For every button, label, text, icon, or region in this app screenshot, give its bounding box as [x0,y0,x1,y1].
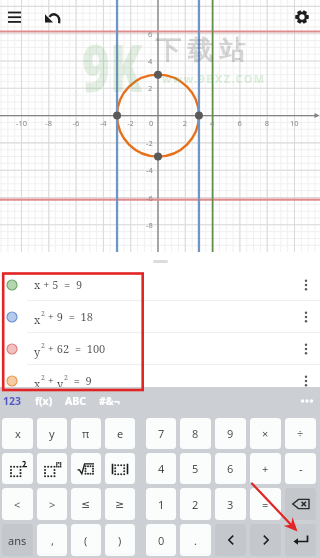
button[interactable]: 5 [180,453,211,484]
button[interactable] [250,524,281,556]
staticText: 2 [192,497,199,512]
staticText: ( [84,533,88,548]
button[interactable]: Menu [4,7,24,27]
button[interactable]: Undo [42,7,62,27]
button[interactable]: ≤ [71,488,101,520]
staticText: 5 [192,461,199,476]
staticText: < [14,497,21,512]
staticText: ≤ [81,498,91,511]
button[interactable]: x [2,418,33,449]
button[interactable]: y [37,418,67,449]
button[interactable]: More options [292,333,320,364]
button[interactable]: + [250,453,281,484]
button[interactable]: More options [292,301,320,332]
staticText: ABC [65,394,86,408]
button[interactable]: e [105,418,135,449]
staticText: 2 [41,341,45,351]
staticText: y [57,376,64,387]
staticText: = [262,497,269,512]
button[interactable]: More options [292,269,320,300]
button[interactable]: More options [292,365,320,387]
staticText: 2 [41,309,45,319]
button[interactable]: 7 [146,418,176,449]
staticText: + 9 = 18 [45,309,93,324]
staticText: y [49,426,55,441]
button[interactable]: x [0,301,320,332]
staticText: x [15,426,21,441]
button[interactable]: π [71,418,101,449]
button[interactable]: ans [2,524,33,556]
button[interactable]: ÷ [285,418,316,449]
staticText: 0 [158,533,165,548]
staticText: e [117,426,124,441]
button[interactable]: 0 [146,524,176,556]
button[interactable] [285,524,316,556]
button[interactable]: ≥ [105,488,135,520]
staticText: ans [8,533,27,548]
button[interactable]: y [0,333,320,364]
button[interactable] [215,524,246,556]
button[interactable]: 3 [215,488,246,520]
button[interactable]: More [299,393,315,409]
staticText: 3 [227,497,234,512]
button[interactable]: = [250,488,281,520]
button[interactable]: 9 [215,418,246,449]
staticText: 下载站 [152,34,248,67]
button[interactable]: 6 [215,453,246,484]
staticText: ÷ [297,426,304,441]
staticText: 6 [227,461,234,476]
button[interactable]: < [2,488,33,520]
button[interactable]: ABC [65,387,86,415]
button[interactable]: f(x) [35,387,53,415]
button[interactable]: 1 [146,488,176,520]
staticText: , [51,533,54,548]
staticText: . [194,533,197,548]
button[interactable]: x + 5 = 9 [0,269,320,300]
staticText: = 9 [68,373,92,387]
staticText: ) [118,533,122,548]
button[interactable]: × [250,418,281,449]
button[interactable]: 123 [3,387,22,415]
button[interactable]: , [37,524,67,556]
staticText: x [34,312,41,327]
staticText: 4 [158,461,165,476]
button[interactable]: > [37,488,67,520]
staticText: ≥ [115,498,125,511]
staticText: 1 [158,497,165,512]
button[interactable] [285,488,316,520]
button[interactable]: ( [71,524,101,556]
staticText: www.9BXZ.COM [162,71,266,86]
staticText: #&¬ [99,394,120,408]
button[interactable]: 4 [146,453,176,484]
button[interactable]: Settings [292,7,312,27]
button[interactable]: - [285,453,316,484]
staticText: 7 [158,426,165,441]
button[interactable]: 2 [180,488,211,520]
button[interactable] [71,453,101,484]
staticText: 2 [41,373,45,383]
staticText: > [49,497,56,512]
button[interactable] [37,453,67,484]
button[interactable]: . [180,524,211,556]
button[interactable]: ) [105,524,135,556]
button[interactable]: 8 [180,418,211,449]
staticText: + [262,461,269,476]
staticText: y [34,344,41,359]
staticText: f(x) [35,394,53,408]
staticText: + [45,373,57,387]
staticText: π [82,426,90,441]
staticText: 2 [64,373,68,383]
staticText: + 62 = 100 [45,341,106,356]
staticText: 9K [82,21,143,111]
staticText: 123 [3,394,22,408]
staticText: 8 [192,426,199,441]
staticText: x + 5 = 9 [34,277,83,292]
staticText: x [34,376,41,387]
button[interactable]: x [0,365,320,387]
staticText: × [262,426,269,441]
staticText: 9 [227,426,234,441]
button[interactable] [2,453,33,484]
button[interactable]: #&¬ [99,387,120,415]
staticText: - [299,461,303,476]
button[interactable] [105,453,135,484]
